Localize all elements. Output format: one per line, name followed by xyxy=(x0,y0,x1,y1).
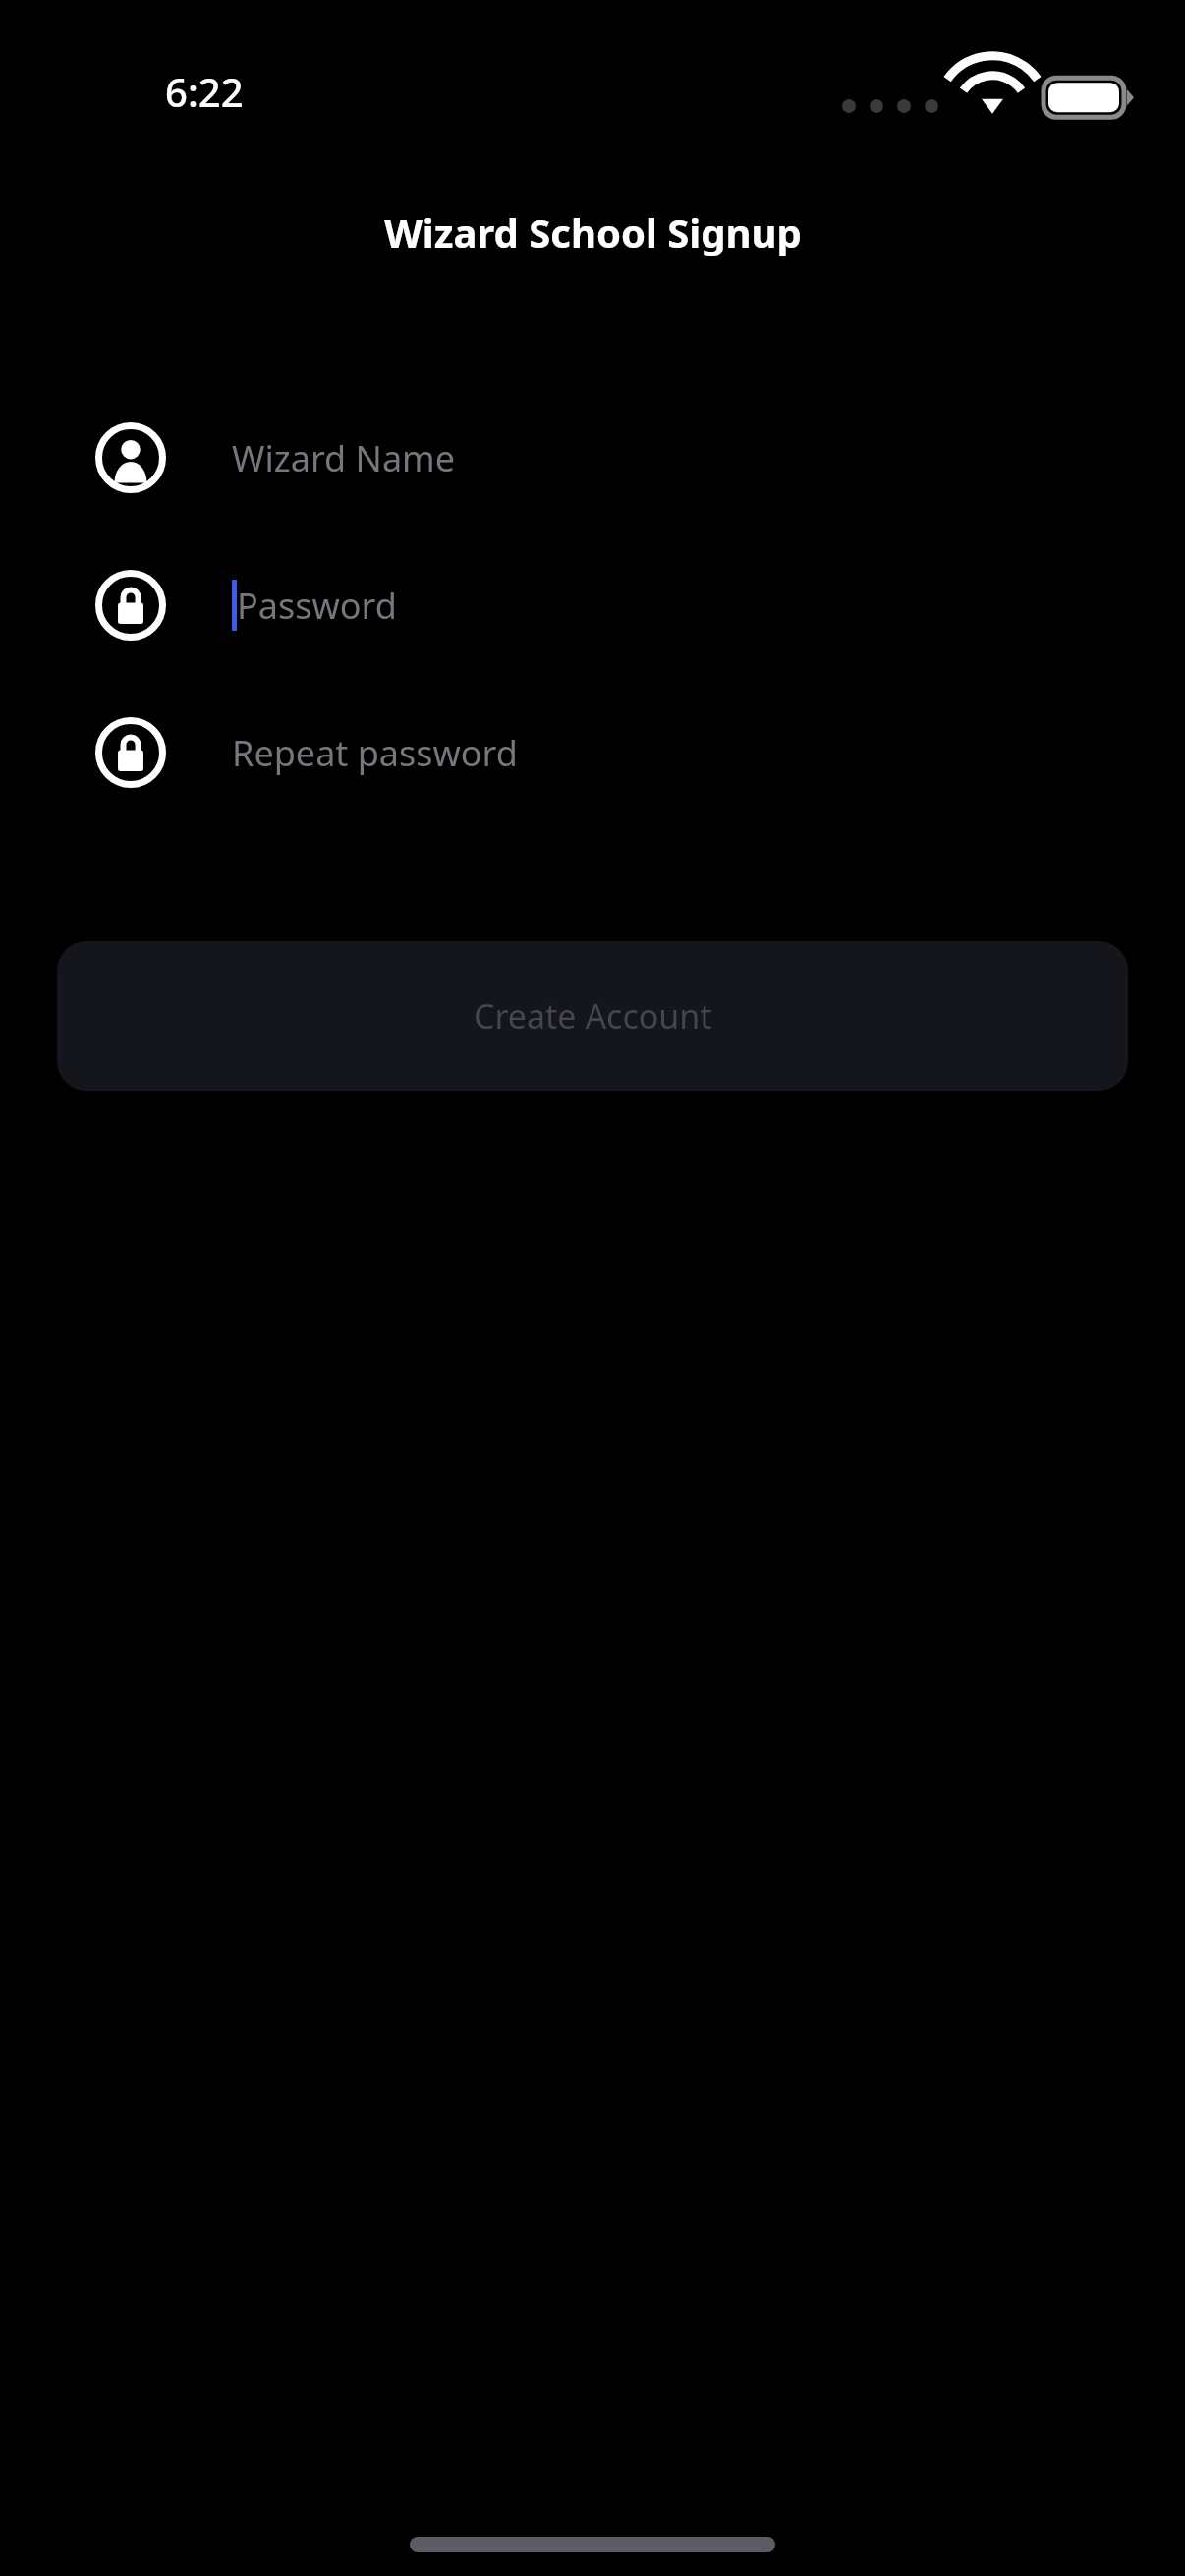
staticText: Create Account xyxy=(474,993,712,1038)
staticText: Wizard Name xyxy=(232,434,456,482)
button[interactable]: Create Account xyxy=(57,941,1128,1091)
button[interactable]: Password field xyxy=(0,546,1185,664)
staticText: Wizard School Signup xyxy=(384,205,802,258)
staticText: 6:22 xyxy=(165,65,244,118)
button[interactable]: Repeat password field xyxy=(0,694,1185,812)
staticText: Password xyxy=(237,582,397,630)
button[interactable]: Wizard Name field xyxy=(0,399,1185,517)
staticText: Repeat password xyxy=(232,729,518,777)
